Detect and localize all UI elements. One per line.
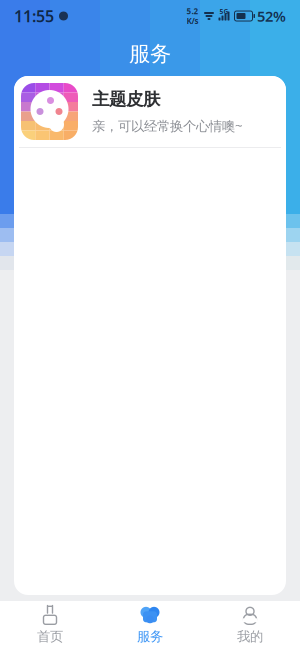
staticText: 主题皮肤 — [92, 88, 160, 110]
staticText: 服务 — [129, 41, 171, 67]
staticText: 亲，可以经常换个心情噢~ — [92, 117, 243, 134]
staticText: 服务 — [137, 628, 163, 645]
button[interactable]: 服务 — [100, 598, 200, 649]
staticText: 11:55 — [14, 5, 54, 27]
button[interactable]: 主题皮肤 — [14, 76, 286, 147]
button[interactable]: 我的 — [200, 598, 300, 649]
staticText: 我的 — [237, 628, 263, 645]
staticText: 首页 — [37, 628, 63, 645]
staticText: 52% — [257, 6, 286, 26]
staticText: 5G — [219, 7, 228, 16]
staticText: K/s — [186, 15, 198, 26]
button[interactable]: 首页 — [0, 598, 100, 649]
staticText: 5.2 — [186, 6, 198, 16]
